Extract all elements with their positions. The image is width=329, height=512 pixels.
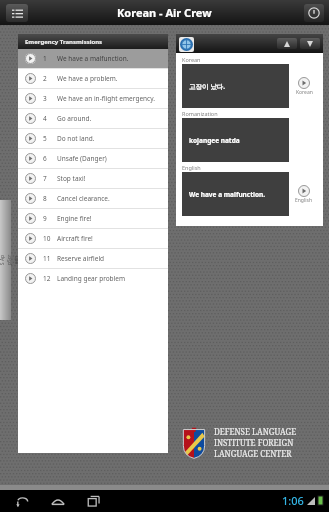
- staticText: CSSS AppScreen: [0, 254, 19, 265]
- button[interactable]: Home: [48, 491, 68, 511]
- staticText: 12: [43, 274, 51, 283]
- staticText: We have a problem.: [57, 74, 118, 83]
- staticText: Korean: [182, 56, 201, 63]
- staticText: English: [295, 197, 313, 204]
- button[interactable]: Next: [300, 38, 320, 49]
- button[interactable]: CSSS AppScreen: [0, 200, 11, 320]
- staticText: 고장이 났다.: [189, 82, 226, 91]
- staticText: We have a malfunction.: [57, 54, 129, 63]
- staticText: Do not land.: [57, 134, 95, 143]
- staticText: Landing gear problem: [57, 274, 126, 283]
- staticText: INSTITUTE FOREIGN: [214, 437, 294, 448]
- staticText: LANGUAGE CENTER: [214, 448, 292, 459]
- staticText: Stop taxi!: [57, 174, 86, 183]
- staticText: 6: [43, 154, 47, 163]
- button[interactable]: Play Korean: [289, 77, 319, 96]
- staticText: Go around.: [57, 114, 92, 123]
- button[interactable]: Play English: [289, 185, 319, 204]
- button[interactable]: Info: [304, 4, 324, 22]
- staticText: 11: [43, 254, 51, 263]
- button[interactable]: Language: [178, 36, 194, 52]
- button[interactable]: 10: [18, 229, 168, 248]
- button[interactable]: 12: [18, 269, 168, 288]
- staticText: We have a malfunction.: [189, 190, 266, 199]
- button[interactable]: 7: [18, 169, 168, 188]
- staticText: Korean - Air Crew: [117, 5, 212, 20]
- button[interactable]: 4: [18, 109, 168, 128]
- staticText: 1:06: [282, 493, 304, 508]
- button[interactable]: 6: [18, 149, 168, 168]
- button[interactable]: 2: [18, 69, 168, 88]
- staticText: kojangee natda: [189, 136, 240, 145]
- button[interactable]: 5: [18, 129, 168, 148]
- staticText: Korean: [296, 89, 313, 96]
- button[interactable]: Back: [12, 491, 32, 511]
- staticText: Engine fire!: [57, 214, 92, 223]
- button[interactable]: Recent apps: [84, 491, 104, 511]
- staticText: Aircraft fire!: [57, 234, 93, 243]
- staticText: English: [182, 164, 201, 171]
- button[interactable]: 8: [18, 189, 168, 208]
- button[interactable]: 3: [18, 89, 168, 108]
- staticText: Emergency Transmissions: [25, 38, 103, 46]
- staticText: 10: [43, 234, 51, 243]
- staticText: Cancel clearance.: [57, 194, 110, 203]
- staticText: We have an in-flight emergency.: [57, 94, 156, 103]
- staticText: 9: [43, 214, 47, 223]
- staticText: Romanization: [182, 110, 218, 117]
- button[interactable]: 9: [18, 209, 168, 228]
- staticText: DEFENSE LANGUAGE: [214, 426, 297, 437]
- staticText: 7: [43, 174, 47, 183]
- button[interactable]: 11: [18, 249, 168, 268]
- staticText: Reserve airfield: [57, 254, 105, 263]
- button[interactable]: Emergency Transmissions: [18, 34, 168, 49]
- staticText: Unsafe (Danger): [57, 154, 107, 163]
- staticText: 1: [43, 54, 47, 63]
- staticText: 2: [43, 74, 47, 83]
- button[interactable]: 1: [18, 49, 168, 68]
- staticText: 4: [43, 114, 47, 123]
- button[interactable]: Previous: [277, 38, 297, 49]
- staticText: 5: [43, 134, 47, 143]
- button[interactable]: Menu: [6, 4, 28, 22]
- staticText: 8: [43, 194, 47, 203]
- staticText: 3: [43, 94, 47, 103]
